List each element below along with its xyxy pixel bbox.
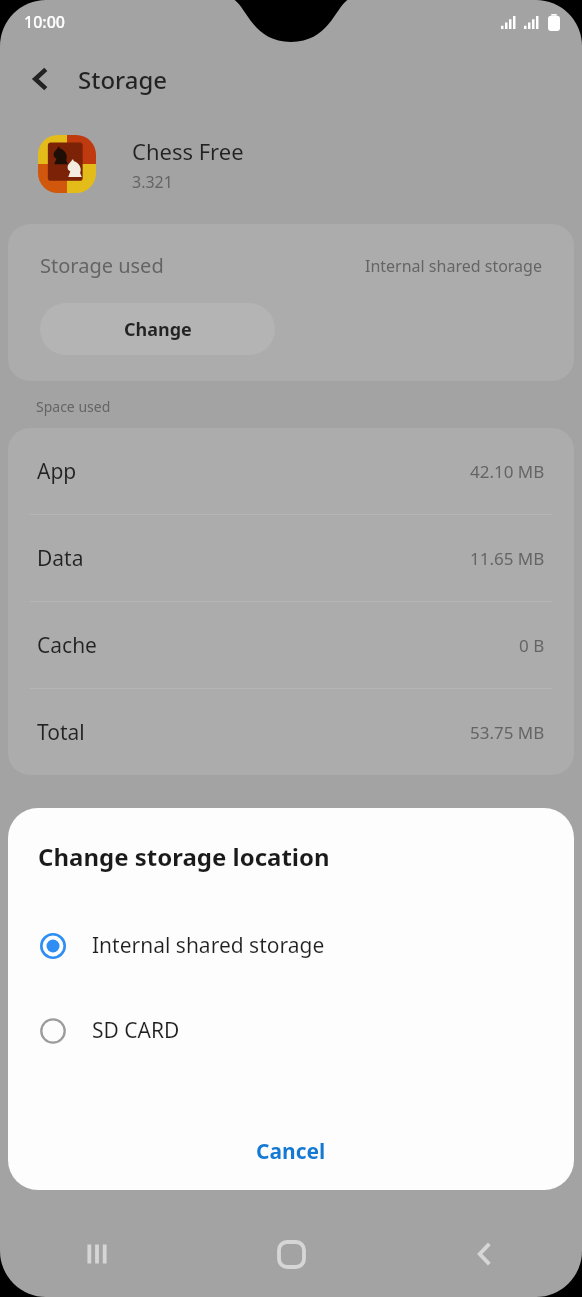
button[interactable]: App xyxy=(8,428,574,514)
staticText: 0 B xyxy=(519,634,545,657)
staticText: Storage xyxy=(78,63,168,96)
staticText: Change xyxy=(124,317,192,342)
button[interactable]: Back xyxy=(388,1211,582,1297)
staticText: Clear cache xyxy=(385,1166,488,1191)
button[interactable]: Cancel xyxy=(8,1112,574,1190)
button[interactable]: SD CARD xyxy=(8,988,574,1073)
staticText: Space used xyxy=(36,397,111,416)
staticText: Data xyxy=(37,544,84,573)
button[interactable]: Recent apps xyxy=(0,1211,194,1297)
staticText: 10:00 xyxy=(24,11,65,33)
button[interactable]: Change xyxy=(40,303,275,355)
staticText: Storage used xyxy=(40,252,164,279)
button[interactable]: Clear cache xyxy=(291,1145,582,1211)
staticText: 11.65 MB xyxy=(470,547,545,570)
staticText: Internal shared storage xyxy=(92,931,325,960)
button[interactable]: Back xyxy=(16,54,66,104)
button[interactable]: Clear data xyxy=(0,1145,291,1211)
button[interactable]: Internal shared storage xyxy=(8,903,574,988)
staticText: Cancel xyxy=(256,1137,326,1166)
staticText: Chess Free xyxy=(132,136,244,166)
button[interactable]: Cache xyxy=(8,602,574,688)
staticText: Clear data xyxy=(100,1166,192,1191)
staticText: 53.75 MB xyxy=(470,721,545,744)
button[interactable]: Data xyxy=(8,515,574,601)
staticText: SD CARD xyxy=(92,1016,180,1045)
staticText: Total xyxy=(37,718,85,747)
staticText: Internal shared storage xyxy=(365,255,542,277)
staticText: Cache xyxy=(37,631,97,660)
staticText: App xyxy=(37,457,77,486)
staticText: 42.10 MB xyxy=(470,460,545,483)
button[interactable]: Home xyxy=(194,1211,388,1297)
staticText: 3.321 xyxy=(132,171,173,193)
button[interactable]: Total xyxy=(8,689,574,775)
staticText: Change storage location xyxy=(38,840,330,873)
